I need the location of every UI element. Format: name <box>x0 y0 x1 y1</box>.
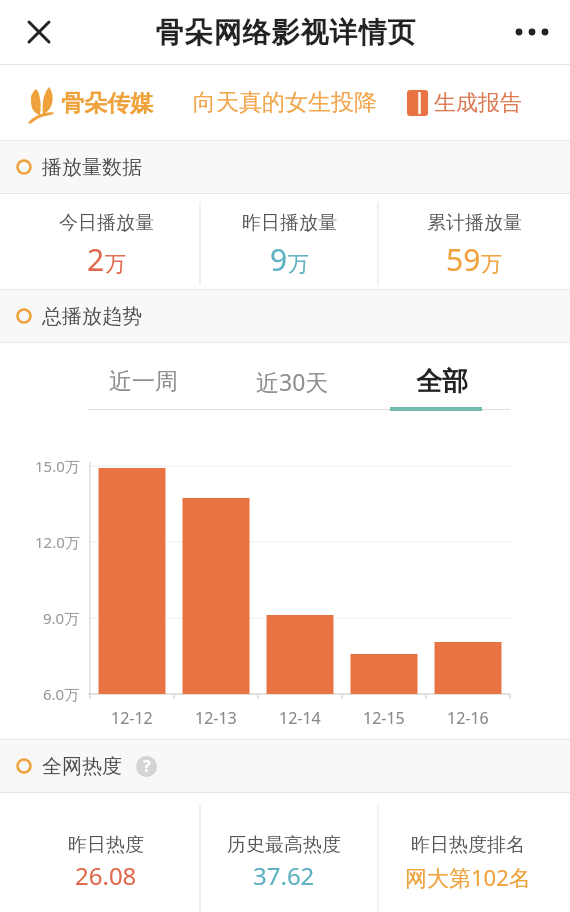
button[interactable]: 骨朵传媒 <box>27 83 153 123</box>
staticText: 12.0万 <box>35 532 80 552</box>
staticText: 万 <box>288 251 309 277</box>
staticText: ? <box>143 755 151 777</box>
staticText: 播放量数据 <box>42 155 142 180</box>
staticText: 骨朵传媒 <box>61 89 153 118</box>
staticText: 12-16 <box>447 707 489 729</box>
button[interactable]: 全部 <box>367 351 516 411</box>
staticText: 9 <box>270 239 288 280</box>
staticText: 2 <box>87 239 105 280</box>
staticText: 37.62 <box>253 859 315 892</box>
staticText: 昨日播放量 <box>242 211 337 235</box>
staticText: 12-14 <box>279 707 321 729</box>
button[interactable]: 近一周 <box>68 351 218 411</box>
staticText: 骨朵网络影视详情页 <box>155 15 416 50</box>
staticText: 15.0万 <box>35 456 80 476</box>
staticText: 12-13 <box>195 707 237 729</box>
staticText: 26.08 <box>75 859 137 892</box>
staticText: 59 <box>446 239 481 280</box>
staticText: 全部 <box>416 365 468 398</box>
button[interactable]: 生成报告 <box>407 89 522 117</box>
staticText: 12-12 <box>111 707 153 729</box>
button[interactable]: 近30天 <box>218 351 367 411</box>
staticText: 昨日热度 <box>68 833 144 857</box>
staticText: 9.0万 <box>43 608 80 628</box>
staticText: 生成报告 <box>434 89 522 117</box>
button[interactable] <box>513 10 557 54</box>
staticText: 网大第102名 <box>405 862 531 892</box>
staticText: 昨日热度排名 <box>411 833 525 857</box>
staticText: 万 <box>481 251 502 277</box>
staticText: 今日播放量 <box>59 211 154 235</box>
staticText: 万 <box>105 251 126 277</box>
staticText: 近一周 <box>109 367 178 396</box>
button[interactable]: ? <box>136 755 157 777</box>
staticText: 全网热度 <box>42 754 122 779</box>
staticText: 近30天 <box>256 366 329 397</box>
button[interactable] <box>17 10 61 54</box>
staticText: 历史最高热度 <box>227 833 341 857</box>
staticText: 总播放趋势 <box>42 304 142 329</box>
staticText: 6.0万 <box>43 684 80 704</box>
staticText: 12-15 <box>363 707 405 729</box>
staticText: 累计播放量 <box>427 211 522 235</box>
button[interactable]: 向天真的女生投降 <box>193 88 377 117</box>
